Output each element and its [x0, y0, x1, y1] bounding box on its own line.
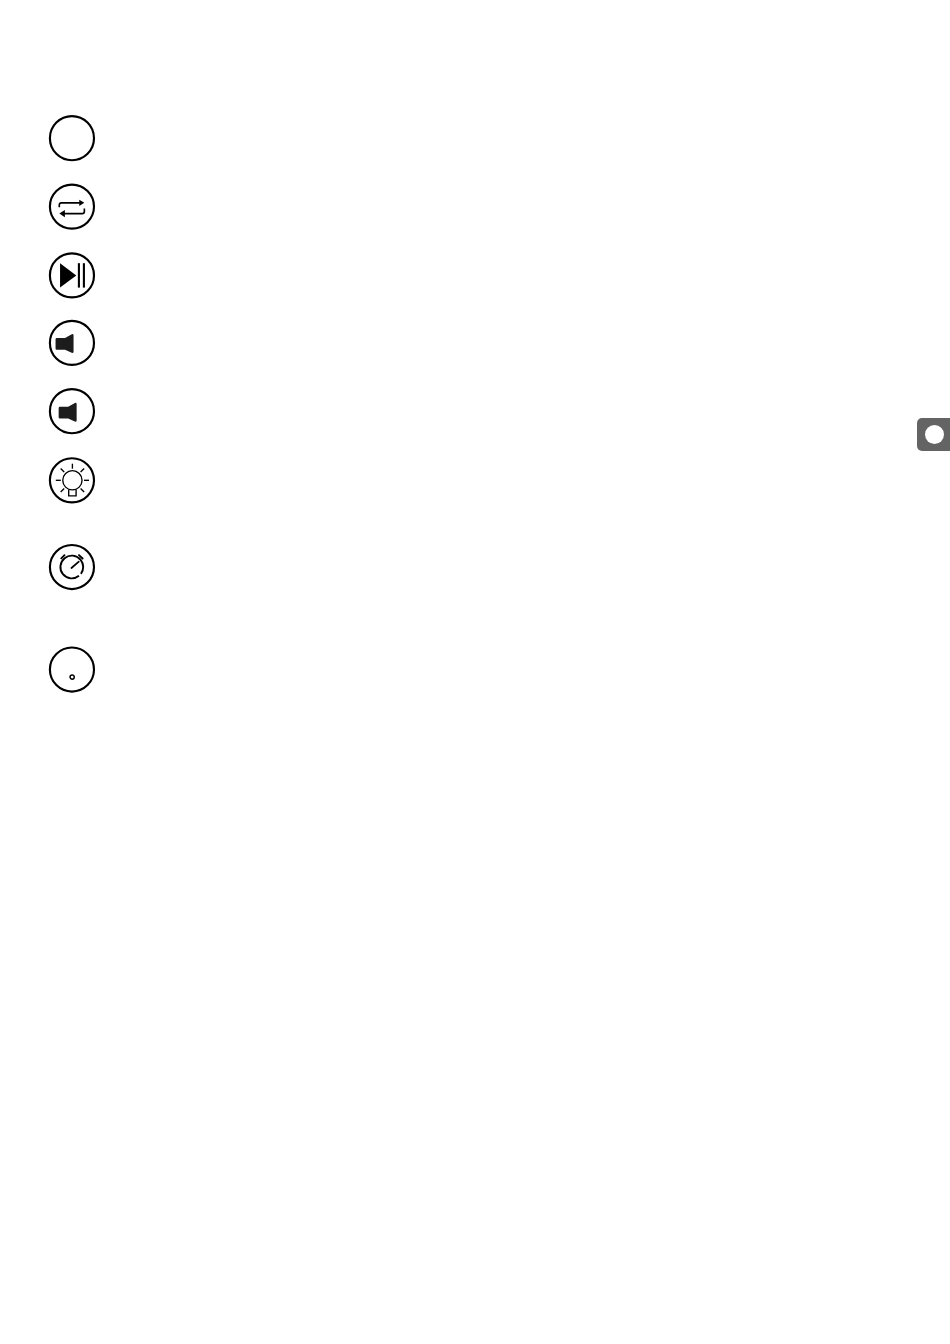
- button[interactable]: Volume up: [49, 388, 96, 435]
- button[interactable]: Record: [49, 646, 96, 693]
- button[interactable]: Swap input: [49, 183, 96, 230]
- button[interactable]: Timer: [49, 544, 96, 591]
- button[interactable]: Play or pause: [49, 252, 96, 299]
- button[interactable]: Volume down: [49, 320, 96, 367]
- button[interactable]: Power: [49, 115, 96, 162]
- button[interactable]: Toggle: [917, 418, 950, 451]
- button[interactable]: Light: [49, 457, 96, 504]
